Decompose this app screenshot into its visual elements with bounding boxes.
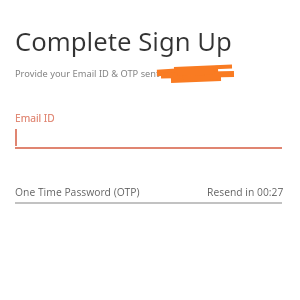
staticText: Resend in 00:27 — [207, 185, 284, 199]
staticText: Provide your Email ID & OTP sent to — [15, 67, 171, 80]
button[interactable]: Email ID — [15, 111, 282, 149]
staticText: Complete Sign Up — [15, 24, 232, 59]
button[interactable]: One Time Password (OTP) — [15, 185, 282, 204]
staticText: One Time Password (OTP) — [15, 185, 140, 199]
button[interactable]: Resend in 00:27 — [207, 185, 284, 199]
staticText: Email ID — [15, 111, 55, 125]
